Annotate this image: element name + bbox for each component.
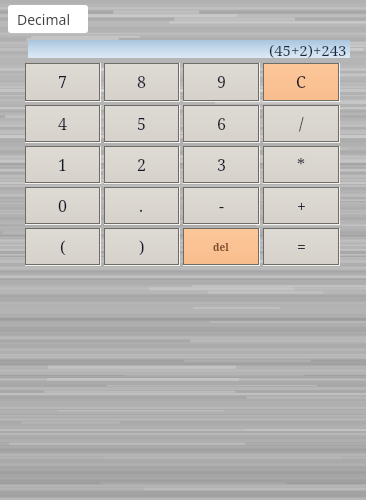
- staticText: 4: [58, 113, 67, 135]
- staticText: =: [297, 236, 306, 258]
- staticText: 6: [217, 113, 226, 135]
- button[interactable]: 3: [183, 146, 260, 184]
- button[interactable]: Number base: Decimal: [8, 5, 88, 33]
- staticText: 9: [217, 71, 226, 93]
- staticText: (: [60, 236, 66, 258]
- staticText: 2: [137, 154, 146, 176]
- button[interactable]: 2: [104, 146, 180, 184]
- staticText: ): [139, 236, 145, 258]
- staticText: 7: [58, 71, 67, 93]
- staticText: +: [297, 195, 306, 217]
- staticText: 5: [137, 113, 146, 135]
- button[interactable]: (: [25, 228, 101, 266]
- button[interactable]: 9: [183, 63, 260, 102]
- button[interactable]: *: [263, 146, 340, 184]
- button[interactable]: =: [263, 228, 340, 266]
- staticText: (45+2)+243: [269, 40, 347, 58]
- button[interactable]: 6: [183, 105, 260, 143]
- button[interactable]: .: [104, 187, 180, 225]
- staticText: /: [299, 113, 304, 135]
- button[interactable]: ): [104, 228, 180, 266]
- staticText: del: [213, 240, 229, 254]
- button[interactable]: C: [263, 63, 340, 102]
- button[interactable]: +: [263, 187, 340, 225]
- staticText: -: [219, 195, 224, 217]
- button[interactable]: 1: [25, 146, 101, 184]
- staticText: 3: [217, 154, 226, 176]
- button[interactable]: 8: [104, 63, 180, 102]
- staticText: C: [296, 71, 306, 93]
- staticText: 1: [58, 154, 67, 176]
- button[interactable]: /: [263, 105, 340, 143]
- staticText: .: [139, 195, 144, 217]
- button[interactable]: -: [183, 187, 260, 225]
- button[interactable]: 7: [25, 63, 101, 102]
- staticText: Decimal: [17, 10, 71, 29]
- button[interactable]: 5: [104, 105, 180, 143]
- staticText: 8: [137, 71, 146, 93]
- button[interactable]: 4: [25, 105, 101, 143]
- button[interactable]: del: [183, 228, 260, 266]
- staticText: *: [297, 154, 306, 176]
- button[interactable]: 0: [25, 187, 101, 225]
- staticText: 0: [58, 195, 67, 217]
